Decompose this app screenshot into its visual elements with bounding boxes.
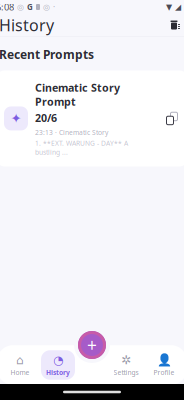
staticText: History bbox=[46, 368, 70, 377]
staticText: G bbox=[27, 2, 33, 12]
staticText: 23:13 · Cinematic Story bbox=[35, 128, 108, 137]
staticText: 20/6 bbox=[35, 111, 57, 125]
staticText: Profile bbox=[153, 368, 174, 377]
staticText: ✦ bbox=[10, 111, 21, 126]
staticText: ◢ bbox=[175, 2, 181, 12]
staticText: + bbox=[87, 333, 97, 356]
staticText: 👤 bbox=[156, 353, 171, 367]
button[interactable]: ⌂ bbox=[1, 350, 39, 380]
button[interactable]: New prompt bbox=[74, 327, 110, 363]
staticText: ✲ bbox=[121, 353, 131, 367]
button[interactable]: 👤 bbox=[145, 350, 183, 380]
button[interactable]: ✦ bbox=[0, 70, 184, 166]
button[interactable]: Clear history bbox=[163, 14, 184, 36]
staticText: Home bbox=[10, 368, 29, 377]
staticText: 6:08 bbox=[0, 1, 14, 13]
staticText: ◎ bbox=[17, 2, 24, 12]
staticText: Recent Prompts bbox=[0, 46, 94, 62]
staticText: Cinematic Story Prompt bbox=[35, 80, 120, 109]
staticText: ◎ bbox=[43, 2, 50, 12]
staticText: History bbox=[0, 14, 54, 36]
staticText: · bbox=[53, 2, 55, 12]
staticText: ◔ bbox=[53, 353, 63, 367]
staticText: Settings bbox=[113, 368, 138, 377]
button[interactable]: ◔ bbox=[39, 350, 77, 380]
staticText: ▼ bbox=[166, 2, 172, 12]
staticText: ⌂ bbox=[16, 353, 24, 367]
staticText: 1. **EXT. WARUNG - DAY** A bustling ... bbox=[35, 139, 128, 156]
button[interactable]: ✲ bbox=[107, 350, 145, 380]
